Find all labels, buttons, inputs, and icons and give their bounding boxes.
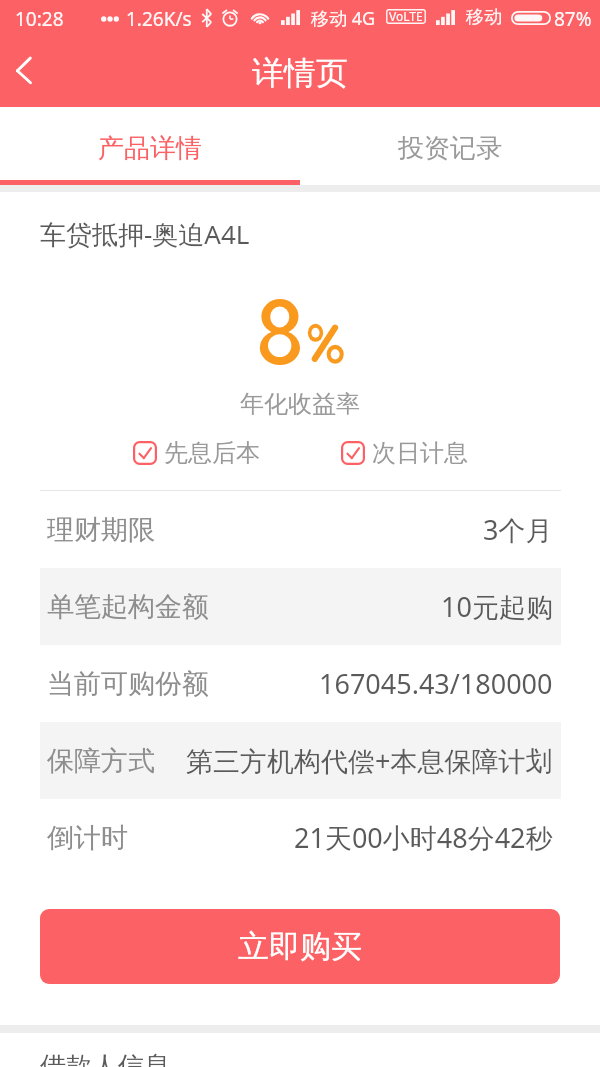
staticText: 10:28 <box>15 6 64 32</box>
staticText: VoLTE <box>389 8 423 23</box>
staticText: 移动 4G <box>311 6 376 31</box>
button[interactable]: 产品详情 <box>0 107 300 185</box>
staticText: 保障方式 <box>47 744 155 778</box>
button[interactable]: Back <box>0 44 48 107</box>
staticText: 立即购买 <box>238 927 362 966</box>
staticText: 当前可购份额 <box>47 667 209 701</box>
staticText: 第三方机构代偿+本息保障计划 <box>186 742 553 779</box>
staticText: 移动 <box>466 6 502 29</box>
staticText: 车贷抵押-奥迫A4L <box>40 216 250 252</box>
staticText: 年化收益率 <box>240 389 360 419</box>
staticText: 理财期限 <box>47 513 155 547</box>
staticText: 借款人信息 <box>40 1050 170 1067</box>
staticText: 先息后本 <box>164 438 260 468</box>
staticText: 10元起购 <box>441 588 553 625</box>
staticText: 167045.43/180000 <box>319 665 553 702</box>
staticText: 1.26K/s <box>126 6 192 32</box>
staticText: 详情页 <box>252 53 348 93</box>
staticText: 87% <box>554 6 592 32</box>
staticText: 单笔起构金额 <box>47 590 209 624</box>
button[interactable]: 立即购买 <box>40 909 560 984</box>
button[interactable]: 投资记录 <box>300 107 600 185</box>
staticText: 21天00小时48分42秒 <box>294 819 553 856</box>
staticText: 次日计息 <box>372 438 468 468</box>
staticText: 3个月 <box>483 511 553 548</box>
staticText: 倒计时 <box>47 821 128 855</box>
staticText: 产品详情 <box>98 132 202 165</box>
staticText: 投资记录 <box>398 132 502 165</box>
